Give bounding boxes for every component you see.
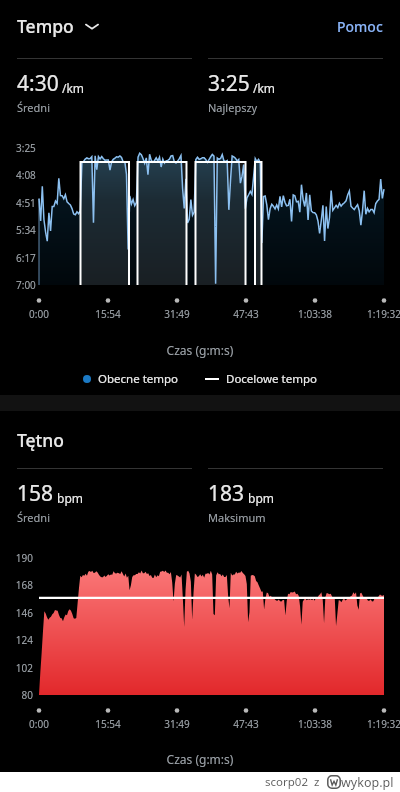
staticText: Średni — [17, 510, 50, 525]
staticText: 5:34 — [16, 223, 36, 237]
staticText: 3:25 — [16, 141, 36, 155]
staticText: 124 — [0, 633, 33, 647]
staticText: Czas (g:m:s) — [0, 342, 400, 358]
staticText: 158 — [17, 479, 54, 508]
staticText: Pomoc — [337, 17, 383, 36]
other: Change metric — [83, 17, 101, 35]
staticText: 146 — [0, 606, 33, 620]
staticText: 4:30 — [17, 69, 59, 98]
staticText: scorp02 z — [265, 774, 323, 790]
staticText: 31:49 — [152, 307, 202, 321]
staticText: 0:00 — [14, 717, 64, 731]
staticText: Najlepszy — [208, 100, 258, 115]
staticText: Czas (g:m:s) — [0, 751, 400, 767]
staticText: Tempo — [17, 14, 74, 38]
staticText: 7:00 — [16, 278, 36, 292]
staticText: 4:51 — [16, 196, 36, 210]
button[interactable]: Tempo — [17, 14, 101, 38]
staticText: 1:19:32 — [359, 307, 400, 321]
staticText: 6:17 — [16, 251, 36, 265]
staticText: 15:54 — [83, 717, 133, 731]
staticText: 190 — [0, 551, 33, 565]
staticText: 183 — [208, 479, 245, 508]
staticText: wykop.pl — [341, 774, 394, 791]
staticText: 15:54 — [83, 307, 133, 321]
staticText: /km — [62, 80, 85, 96]
staticText: 47:43 — [221, 307, 271, 321]
staticText: 1:03:38 — [290, 307, 340, 321]
staticText: Średni — [17, 100, 50, 115]
staticText: bpm — [57, 490, 83, 506]
staticText: 47:43 — [221, 717, 271, 731]
staticText: /km — [253, 80, 276, 96]
staticText: Tętno — [17, 428, 64, 452]
staticText: Obecne tempo — [98, 371, 179, 387]
staticText: 0:00 — [14, 307, 64, 321]
staticText: Docelowe tempo — [226, 371, 317, 387]
staticText: Maksimum — [208, 510, 266, 525]
staticText: 80 — [0, 688, 33, 702]
staticText: 1:03:38 — [290, 717, 340, 731]
button[interactable]: Pomoc — [337, 17, 383, 36]
staticText: 102 — [0, 661, 33, 675]
staticText: 4:08 — [16, 168, 36, 182]
staticText: bpm — [248, 490, 274, 506]
staticText: 168 — [0, 578, 33, 592]
staticText: 3:25 — [208, 69, 250, 98]
staticText: 1:19:32 — [359, 717, 400, 731]
staticText: 31:49 — [152, 717, 202, 731]
